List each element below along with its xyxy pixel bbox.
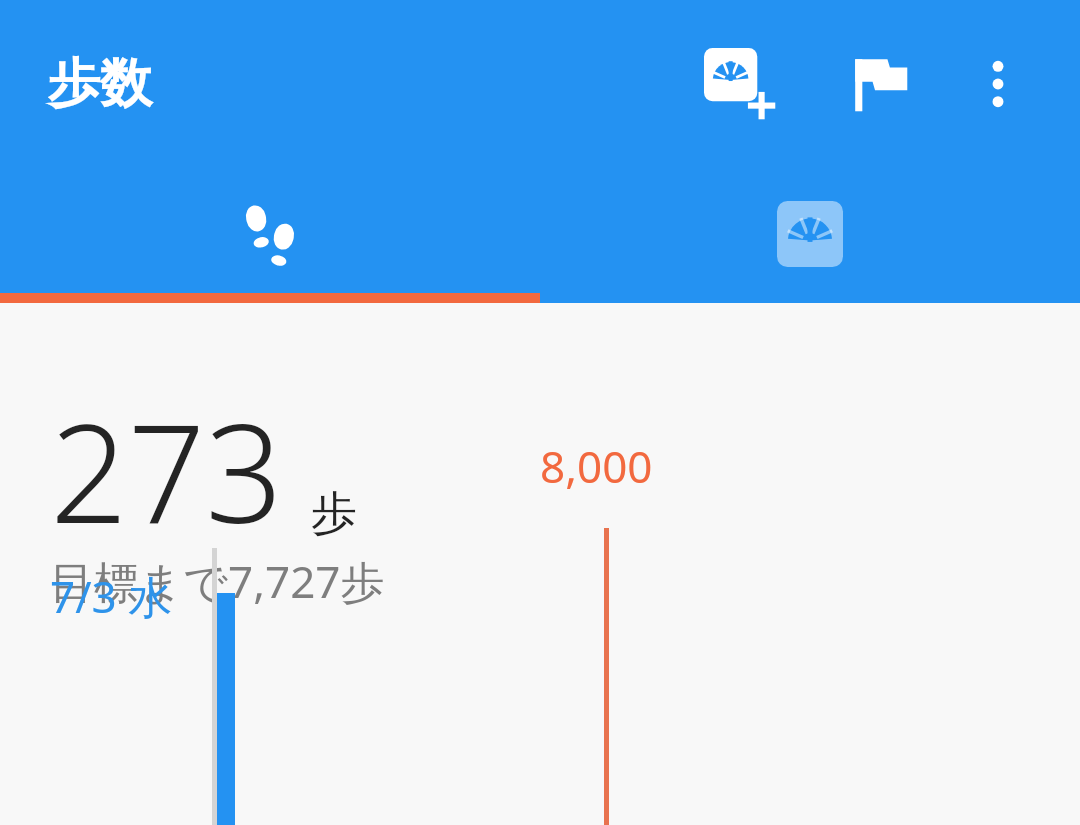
staticText: 歩 xyxy=(311,485,357,543)
staticText: 8,000 xyxy=(540,436,653,496)
button[interactable]: 目標 xyxy=(828,32,932,136)
staticText: 7/3 水 xyxy=(50,566,173,626)
button[interactable]: 歩数 xyxy=(0,168,540,300)
staticText: 273 xyxy=(50,378,283,563)
button[interactable]: 体重を記録 xyxy=(684,28,796,140)
staticText: 歩数 xyxy=(48,51,152,117)
staticText: 目標まで7,727歩 xyxy=(50,551,385,611)
button[interactable]: その他のオプション xyxy=(946,32,1050,136)
button[interactable]: 体重 xyxy=(540,168,1080,300)
